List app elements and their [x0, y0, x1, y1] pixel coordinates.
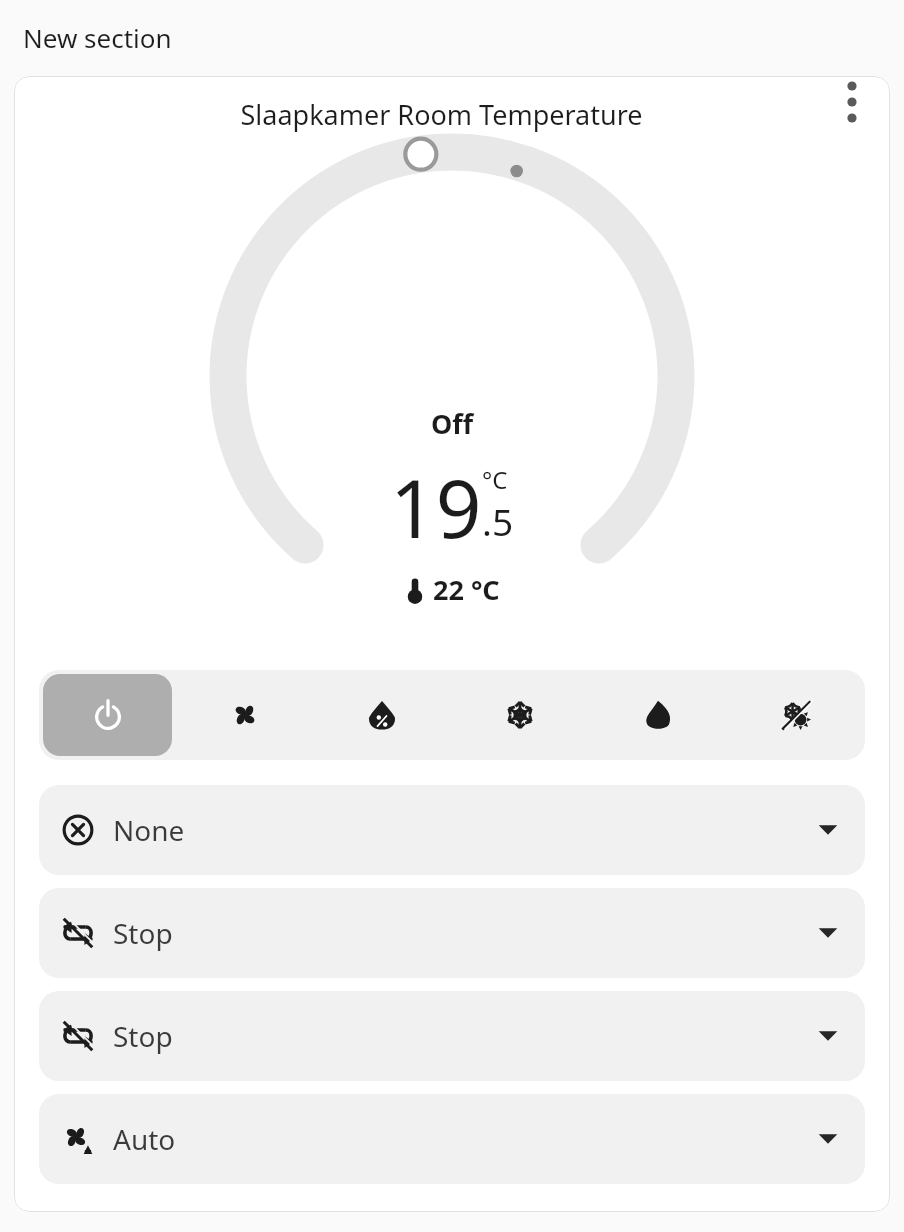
staticText: None [113, 811, 185, 849]
staticText: Slaapkamer Room Temperature [240, 96, 643, 133]
button[interactable]: None [39, 785, 865, 875]
button[interactable]: Dry [317, 674, 447, 756]
staticText: Stop [113, 1017, 173, 1055]
button[interactable]: Fan only [180, 674, 309, 756]
staticText: New section [23, 20, 172, 55]
button[interactable]: Stop [39, 991, 865, 1081]
button[interactable]: Stop [39, 888, 865, 978]
button[interactable]: Auto [731, 674, 861, 756]
button[interactable]: Heat [593, 674, 723, 756]
staticText: Off [431, 405, 474, 442]
button[interactable]: Auto [39, 1094, 865, 1184]
staticText: 19 [390, 452, 482, 561]
staticText: °C [482, 463, 508, 496]
staticText: .5 [482, 496, 514, 546]
button[interactable]: Cool [455, 674, 585, 756]
button[interactable]: Power off [43, 674, 172, 756]
staticText: Stop [113, 914, 173, 952]
button[interactable]: More options [828, 78, 876, 126]
staticText: Auto [113, 1120, 176, 1158]
staticText: 22 °C [433, 571, 500, 608]
